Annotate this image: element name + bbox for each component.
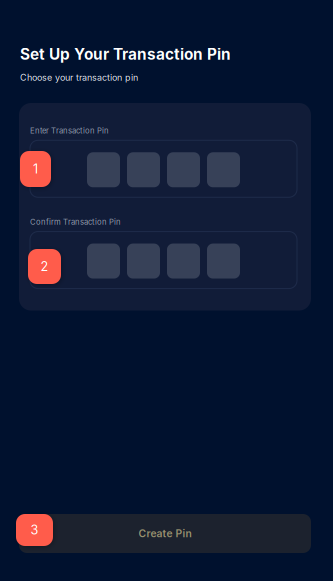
button[interactable]: Confirm Transaction Pin digit 4 xyxy=(207,244,240,279)
staticText: Confirm Transaction Pin xyxy=(30,217,121,227)
button[interactable]: Create Pin xyxy=(19,514,311,553)
button[interactable]: Confirm Transaction Pin digit 3 xyxy=(167,244,200,279)
button[interactable]: Confirm Transaction Pin digit 1 xyxy=(87,244,120,279)
staticText: Enter Transaction Pin xyxy=(30,126,109,135)
button[interactable]: Enter Transaction Pin digit 3 xyxy=(167,152,200,187)
button[interactable]: Confirm Transaction Pin digit 2 xyxy=(127,244,160,279)
button[interactable]: Enter Transaction Pin digit 1 xyxy=(87,152,120,187)
staticText: 2 xyxy=(40,259,48,274)
staticText: 1 xyxy=(33,161,38,177)
staticText: Choose your transaction pin xyxy=(20,72,138,83)
button[interactable]: Enter Transaction Pin digit 4 xyxy=(207,152,240,187)
staticText: Create Pin xyxy=(138,527,191,540)
staticText: Set Up Your Transaction Pin xyxy=(20,45,231,64)
staticText: 3 xyxy=(30,522,38,538)
button[interactable]: Enter Transaction Pin digit 2 xyxy=(127,152,160,187)
